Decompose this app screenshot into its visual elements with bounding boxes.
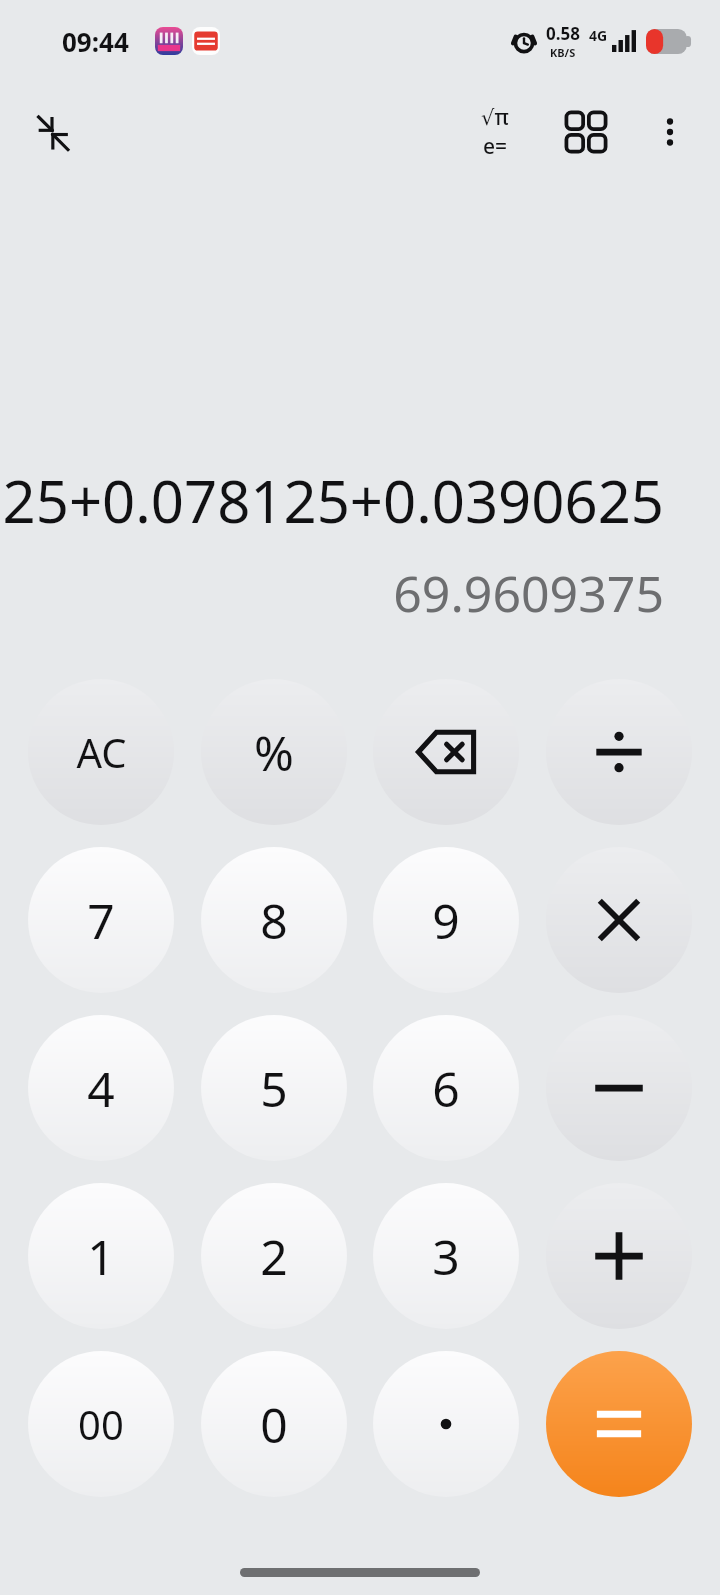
button[interactable]: 69.9609375: [393, 559, 664, 627]
button[interactable]: 3: [373, 1183, 519, 1329]
staticText: √π: [481, 103, 509, 132]
button[interactable]: 5: [201, 1015, 347, 1161]
button[interactable]: Equals: [546, 1351, 692, 1497]
button[interactable]: 7: [28, 847, 174, 993]
staticText: 0: [260, 1392, 288, 1457]
staticText: 8: [260, 888, 288, 953]
button[interactable]: Backspace: [373, 679, 519, 825]
button[interactable]: Decimal point: [373, 1351, 519, 1497]
staticText: 7: [87, 888, 115, 953]
staticText: AC: [76, 725, 127, 779]
staticText: 00: [78, 1397, 124, 1451]
button[interactable]: More options: [640, 102, 700, 162]
button[interactable]: %: [201, 679, 347, 825]
staticText: %: [254, 720, 294, 785]
button[interactable]: 2: [201, 1183, 347, 1329]
button[interactable]: Multiply: [546, 847, 692, 993]
button[interactable]: 1: [28, 1183, 174, 1329]
staticText: 25+0.078125+0.0390625: [2, 461, 664, 537]
button[interactable]: Subtract: [546, 1015, 692, 1161]
staticText: 4: [87, 1056, 115, 1121]
button[interactable]: 25+0.078125+0.0390625: [0, 461, 664, 537]
button[interactable]: Collapse: [20, 100, 84, 164]
staticText: 6: [432, 1056, 460, 1121]
button[interactable]: Scientific mode: [460, 97, 530, 167]
button[interactable]: Add: [546, 1183, 692, 1329]
button[interactable]: History: [554, 100, 618, 164]
button[interactable]: AC: [28, 679, 174, 825]
staticText: 5: [260, 1056, 288, 1121]
staticText: 1: [87, 1224, 115, 1289]
staticText: 4G: [589, 26, 608, 45]
staticText: 0.58: [546, 22, 580, 45]
staticText: 2: [260, 1224, 288, 1289]
staticText: 9: [432, 888, 460, 953]
button[interactable]: 00: [28, 1351, 174, 1497]
button[interactable]: 8: [201, 847, 347, 993]
button[interactable]: 9: [373, 847, 519, 993]
button[interactable]: 0: [201, 1351, 347, 1497]
staticText: 09:44: [62, 24, 129, 59]
button[interactable]: Divide: [546, 679, 692, 825]
button[interactable]: 4: [28, 1015, 174, 1161]
button[interactable]: 6: [373, 1015, 519, 1161]
staticText: KB/S: [550, 45, 576, 60]
staticText: e=: [483, 132, 508, 161]
staticText: 3: [432, 1224, 460, 1289]
